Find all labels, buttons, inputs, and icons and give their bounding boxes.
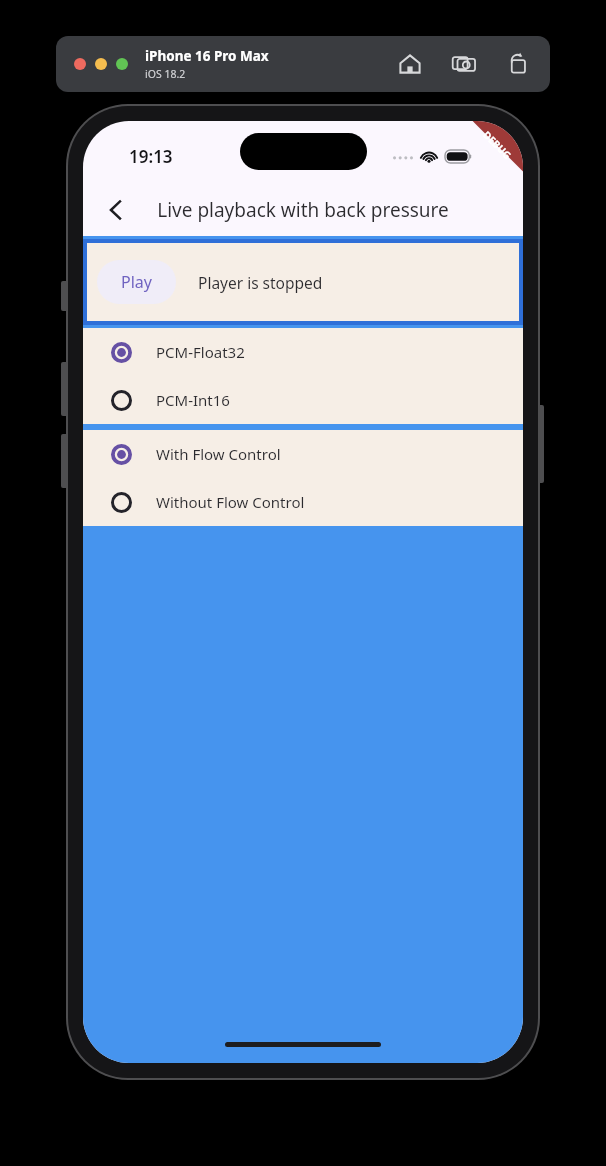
- staticText: iOS 18.2: [145, 67, 186, 81]
- staticText: 19:13: [129, 145, 173, 168]
- staticText: PCM-Float32: [156, 342, 245, 362]
- button[interactable]: Without Flow Control: [83, 478, 523, 526]
- button[interactable]: PCM-Float32: [83, 328, 523, 376]
- staticText: iPhone 16 Pro Max: [145, 47, 269, 65]
- button[interactable]: With Flow Control: [83, 430, 523, 478]
- button[interactable]: Home: [398, 52, 422, 76]
- button[interactable]: Play: [97, 260, 176, 304]
- button[interactable]: PCM-Int16: [83, 376, 523, 424]
- staticText: Live playback with back pressure: [157, 197, 449, 223]
- button[interactable]: Rotate: [506, 52, 530, 76]
- staticText: Without Flow Control: [156, 492, 305, 512]
- staticText: With Flow Control: [156, 444, 281, 464]
- staticText: PCM-Int16: [156, 390, 230, 410]
- staticText: Play: [121, 271, 152, 293]
- button[interactable]: Screenshot: [452, 52, 476, 76]
- staticText: Player is stopped: [198, 272, 323, 293]
- button[interactable]: Back: [94, 188, 138, 232]
- staticText: DEBUG: [480, 128, 515, 162]
